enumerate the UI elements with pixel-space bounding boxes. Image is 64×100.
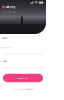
staticText: name@mail xyxy=(0,46,12,49)
staticText: Sign up xyxy=(26,88,33,90)
staticText: Evently xyxy=(6,5,15,9)
staticText: Sign In xyxy=(18,76,28,80)
staticText: Pass xyxy=(3,60,7,62)
staticText: No account? xyxy=(13,88,25,90)
button[interactable]: Sign up xyxy=(26,88,33,90)
button[interactable]: Sign In xyxy=(3,74,43,82)
staticText: Email xyxy=(2,37,8,39)
staticText: Welcome back xyxy=(2,10,16,13)
